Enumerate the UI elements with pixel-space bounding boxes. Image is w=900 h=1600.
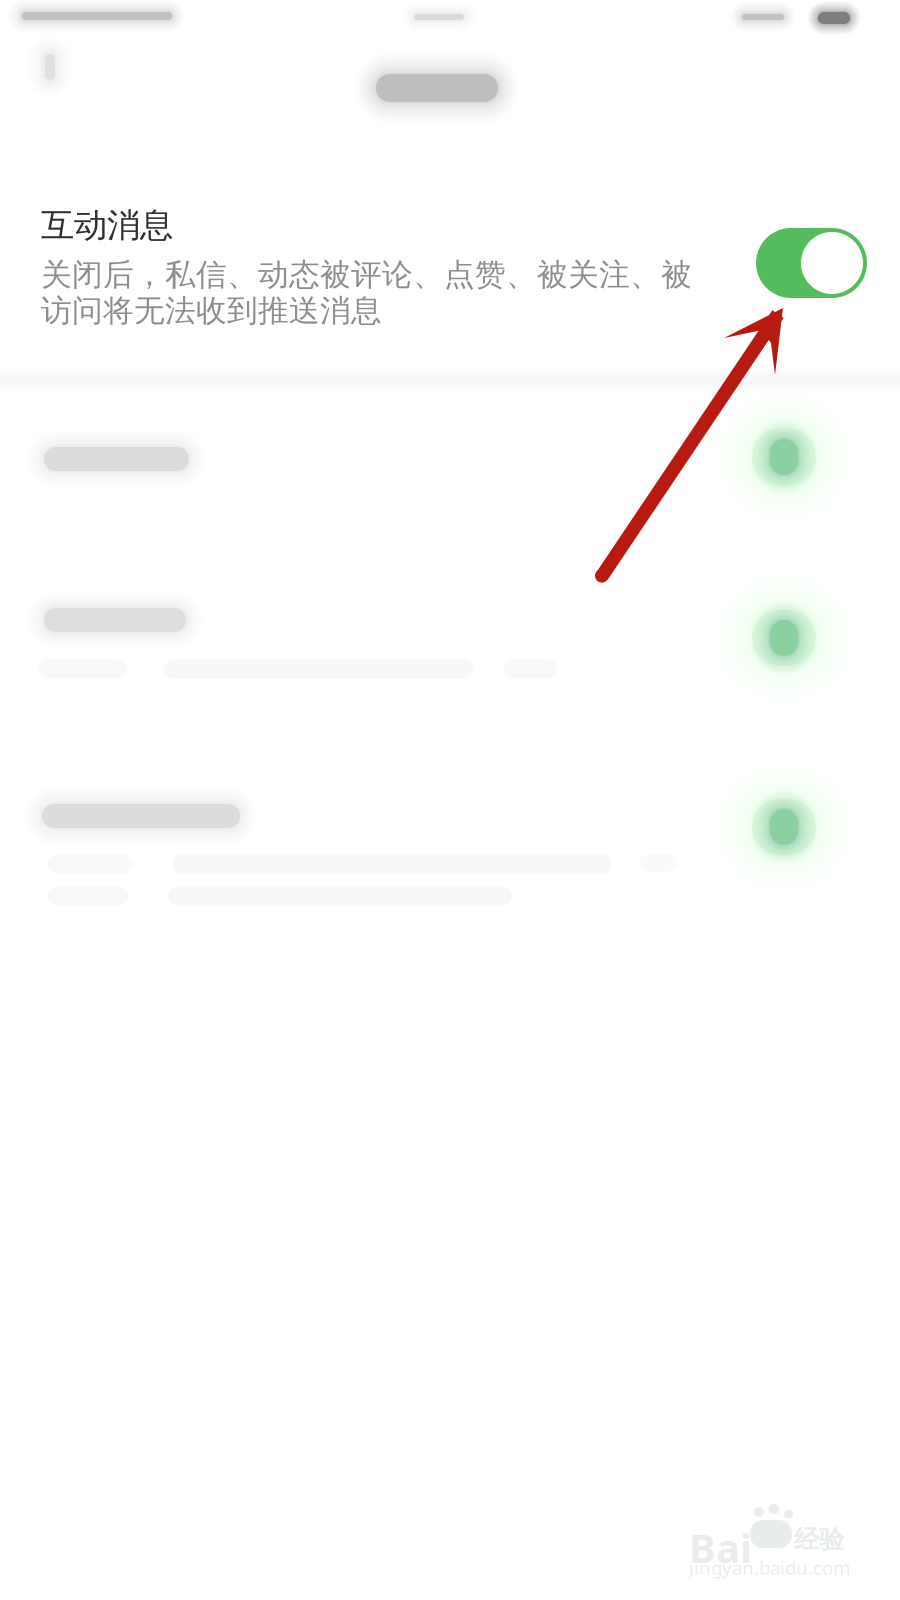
staticText: 经验 xyxy=(794,1524,844,1555)
staticText: Bai xyxy=(689,1521,752,1574)
staticText: 互动消息 xyxy=(41,205,173,246)
staticText: jingyan.baidu.com xyxy=(689,1555,850,1580)
staticText: 关闭后，私信、动态被评论、点赞、被关注、被 xyxy=(41,256,692,294)
button[interactable]: 互动消息开关 xyxy=(756,228,867,298)
staticText: 访问将无法收到推送消息 xyxy=(41,292,382,330)
button[interactable]: 返回 xyxy=(40,50,136,136)
